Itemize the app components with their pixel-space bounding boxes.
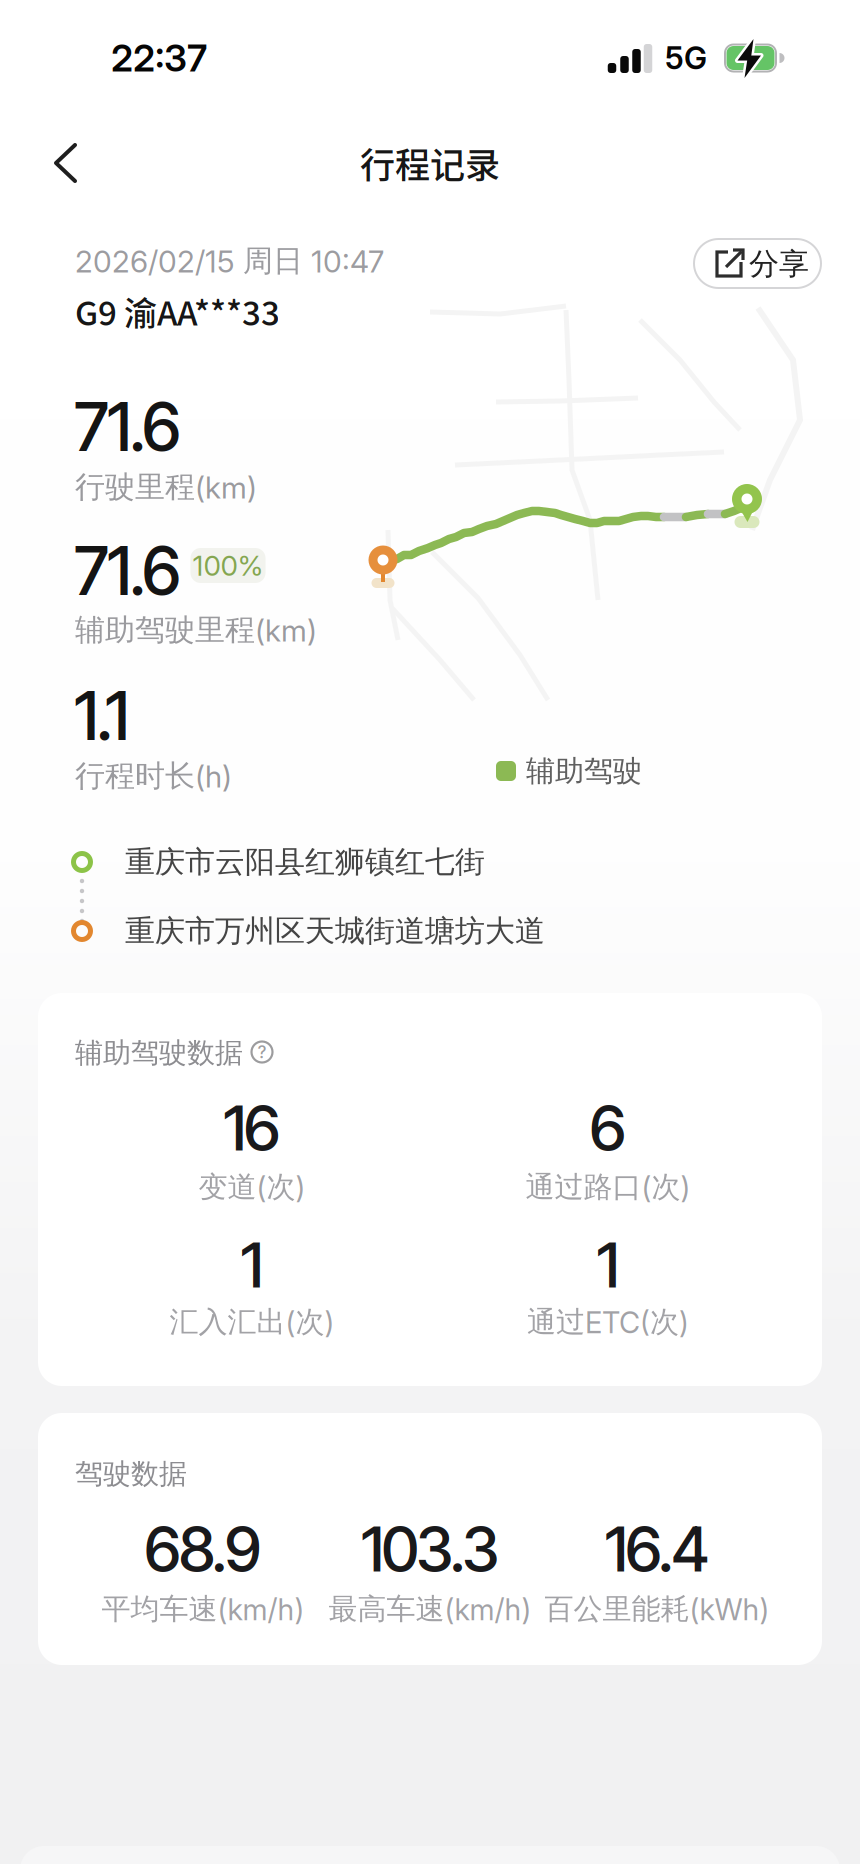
staticText: 2026/02/15 周日 10:47 [75, 243, 384, 279]
staticText: 100% [192, 549, 263, 582]
staticText: 行驶里程(km) [75, 469, 257, 505]
staticText: 68.9 [144, 1512, 262, 1585]
staticText: 行程记录 [360, 138, 500, 188]
staticText: 5G [665, 40, 707, 76]
staticText: 1 [240, 1228, 263, 1301]
staticText: 汇入汇出(次) [169, 1304, 334, 1340]
staticText: 平均车速(km/h) [101, 1591, 304, 1627]
staticText: 辅助驾驶里程(km) [75, 612, 317, 648]
staticText: 行程时长(h) [75, 758, 232, 794]
staticText: 71.6 [74, 532, 181, 610]
staticText: 最高车速(km/h) [328, 1591, 531, 1627]
staticText: 6 [589, 1091, 626, 1164]
staticText: 1.1 [74, 677, 129, 755]
staticText: 重庆市云阳县红狮镇红七街 [125, 844, 485, 880]
staticText: 变道(次) [198, 1169, 305, 1205]
staticText: 分享 [749, 246, 809, 282]
staticText: 驾驶数据 [75, 1457, 187, 1491]
staticText: 71.6 [74, 388, 181, 466]
staticText: 22:37 [111, 36, 207, 80]
button[interactable]: Back [34, 131, 98, 195]
staticText: 百公里能耗(kWh) [544, 1591, 769, 1627]
staticText: 辅助驾驶 [526, 753, 642, 789]
staticText: 通过路口(次) [525, 1169, 690, 1205]
button[interactable]: About assisted driving data [249, 1039, 275, 1065]
staticText: 103.3 [361, 1512, 499, 1585]
staticText: G9 渝AA***33 [75, 288, 280, 334]
staticText: ? [257, 1042, 266, 1062]
staticText: 通过ETC(次) [527, 1304, 689, 1340]
button[interactable]: 分享 [693, 238, 822, 289]
staticText: 16 [223, 1091, 281, 1164]
staticText: 16.4 [605, 1512, 709, 1585]
staticText: 重庆市万州区天城街道塘坊大道 [125, 913, 545, 949]
staticText: 辅助驾驶数据 [75, 1036, 243, 1070]
staticText: 1 [596, 1228, 619, 1301]
